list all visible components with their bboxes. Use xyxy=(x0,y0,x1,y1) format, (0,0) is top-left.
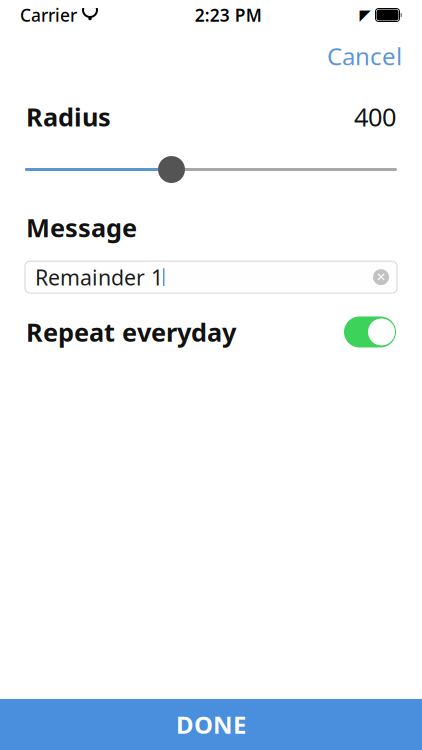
staticText: Remainder 1 xyxy=(35,263,163,291)
staticText: 2:23 PM xyxy=(195,3,262,26)
staticText: ◤ xyxy=(359,7,370,23)
staticText: DONE xyxy=(176,709,246,740)
staticText: Carrier xyxy=(20,3,77,26)
button[interactable]: Remainder 1 xyxy=(25,261,397,293)
staticText: Repeat everyday xyxy=(26,315,236,349)
staticText: ✕ xyxy=(376,270,386,284)
staticText: 400 xyxy=(354,100,396,133)
button[interactable]: Repeat everyday toggle xyxy=(344,316,396,347)
staticText: Message xyxy=(26,210,137,244)
button[interactable]: Cancel xyxy=(321,34,408,78)
staticText xyxy=(77,3,82,26)
button[interactable]: DONE xyxy=(0,699,422,750)
staticText: Cancel xyxy=(327,40,402,72)
staticText xyxy=(371,5,375,25)
staticText: Radius xyxy=(26,100,111,133)
